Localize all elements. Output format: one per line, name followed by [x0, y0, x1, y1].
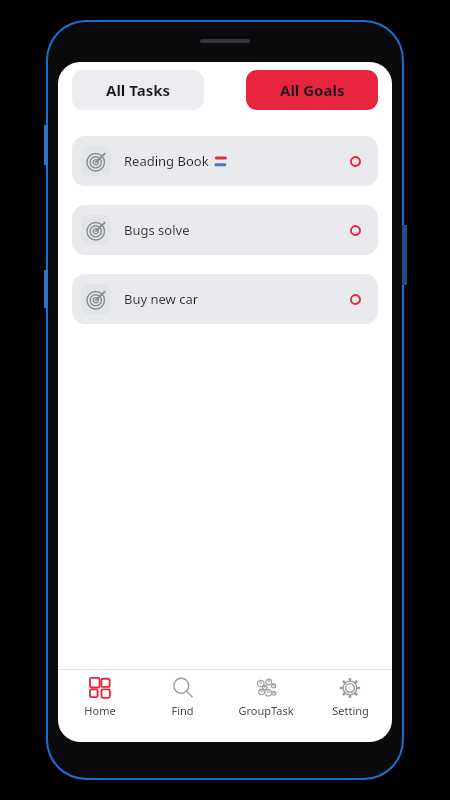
staticText: Home	[84, 703, 116, 718]
button[interactable]: Buy new car	[72, 274, 378, 324]
staticText: Bugs solve	[124, 221, 190, 239]
button[interactable]: Bugs solve	[72, 205, 378, 255]
staticText: All Tasks	[106, 80, 171, 100]
staticText: Reading Book	[124, 152, 209, 170]
staticText: Setting	[332, 703, 369, 718]
button[interactable]: All Goals	[246, 70, 378, 110]
button[interactable]: Setting	[308, 670, 392, 728]
staticText: GroupTask	[238, 703, 294, 718]
button[interactable]: All Tasks	[72, 70, 204, 110]
staticText: Find	[171, 703, 194, 718]
button[interactable]: Find	[141, 670, 224, 728]
staticText: All Goals	[280, 80, 345, 100]
button[interactable]: Reading Book	[72, 136, 378, 186]
button[interactable]: Home	[58, 670, 141, 728]
staticText: Buy new car	[124, 290, 199, 308]
button[interactable]: GroupTask	[224, 670, 308, 728]
